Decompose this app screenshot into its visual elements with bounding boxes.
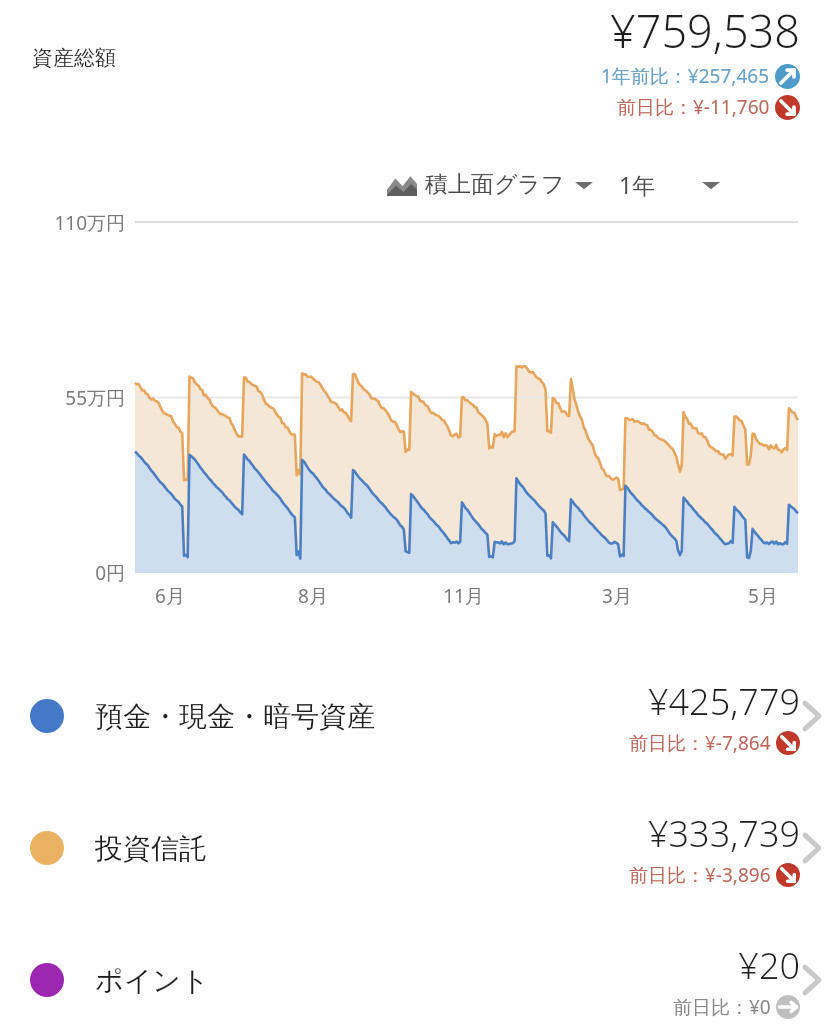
staticText: 110万円 [54, 210, 125, 236]
other: Open 投資信託 details [802, 828, 822, 868]
button[interactable]: 預金・現金・暗号資産 [0, 668, 828, 764]
button[interactable]: ポイント [0, 932, 828, 1024]
staticText: 資産総額 [32, 45, 116, 71]
staticText: 5月 [748, 583, 778, 609]
button[interactable]: 投資信託 [0, 800, 828, 896]
staticText: 前日比：¥-11,760 [617, 94, 770, 120]
staticText: 前日比：¥-7,864 [629, 730, 771, 756]
staticText: 1年前比：¥257,465 [601, 63, 770, 89]
staticText: 預金・現金・暗号資産 [95, 699, 375, 734]
staticText: 55万円 [65, 385, 125, 411]
button[interactable]: 1年 [617, 165, 722, 204]
staticText: 3月 [602, 583, 632, 609]
staticText: 積上面グラフ [425, 170, 565, 199]
staticText: ポイント [95, 963, 210, 998]
staticText: 6月 [155, 583, 185, 609]
staticText: 前日比：¥0 [673, 994, 771, 1020]
staticText: ¥333,739 [648, 809, 800, 858]
staticText: 投資信託 [95, 831, 207, 866]
staticText: 0円 [95, 560, 125, 586]
staticText: 11月 [443, 583, 484, 609]
staticText: ¥20 [738, 941, 800, 990]
staticText: ¥425,779 [648, 677, 800, 726]
staticText: 8月 [298, 583, 328, 609]
button[interactable]: 積上面グラフ [385, 166, 595, 203]
staticText: 前日比：¥-3,896 [629, 862, 771, 888]
staticText: 1年 [619, 169, 656, 200]
other: Open ポイント details [802, 960, 822, 1000]
staticText: ¥759,538 [610, 0, 800, 61]
other: Open 預金・現金・暗号資産 details [802, 696, 822, 736]
